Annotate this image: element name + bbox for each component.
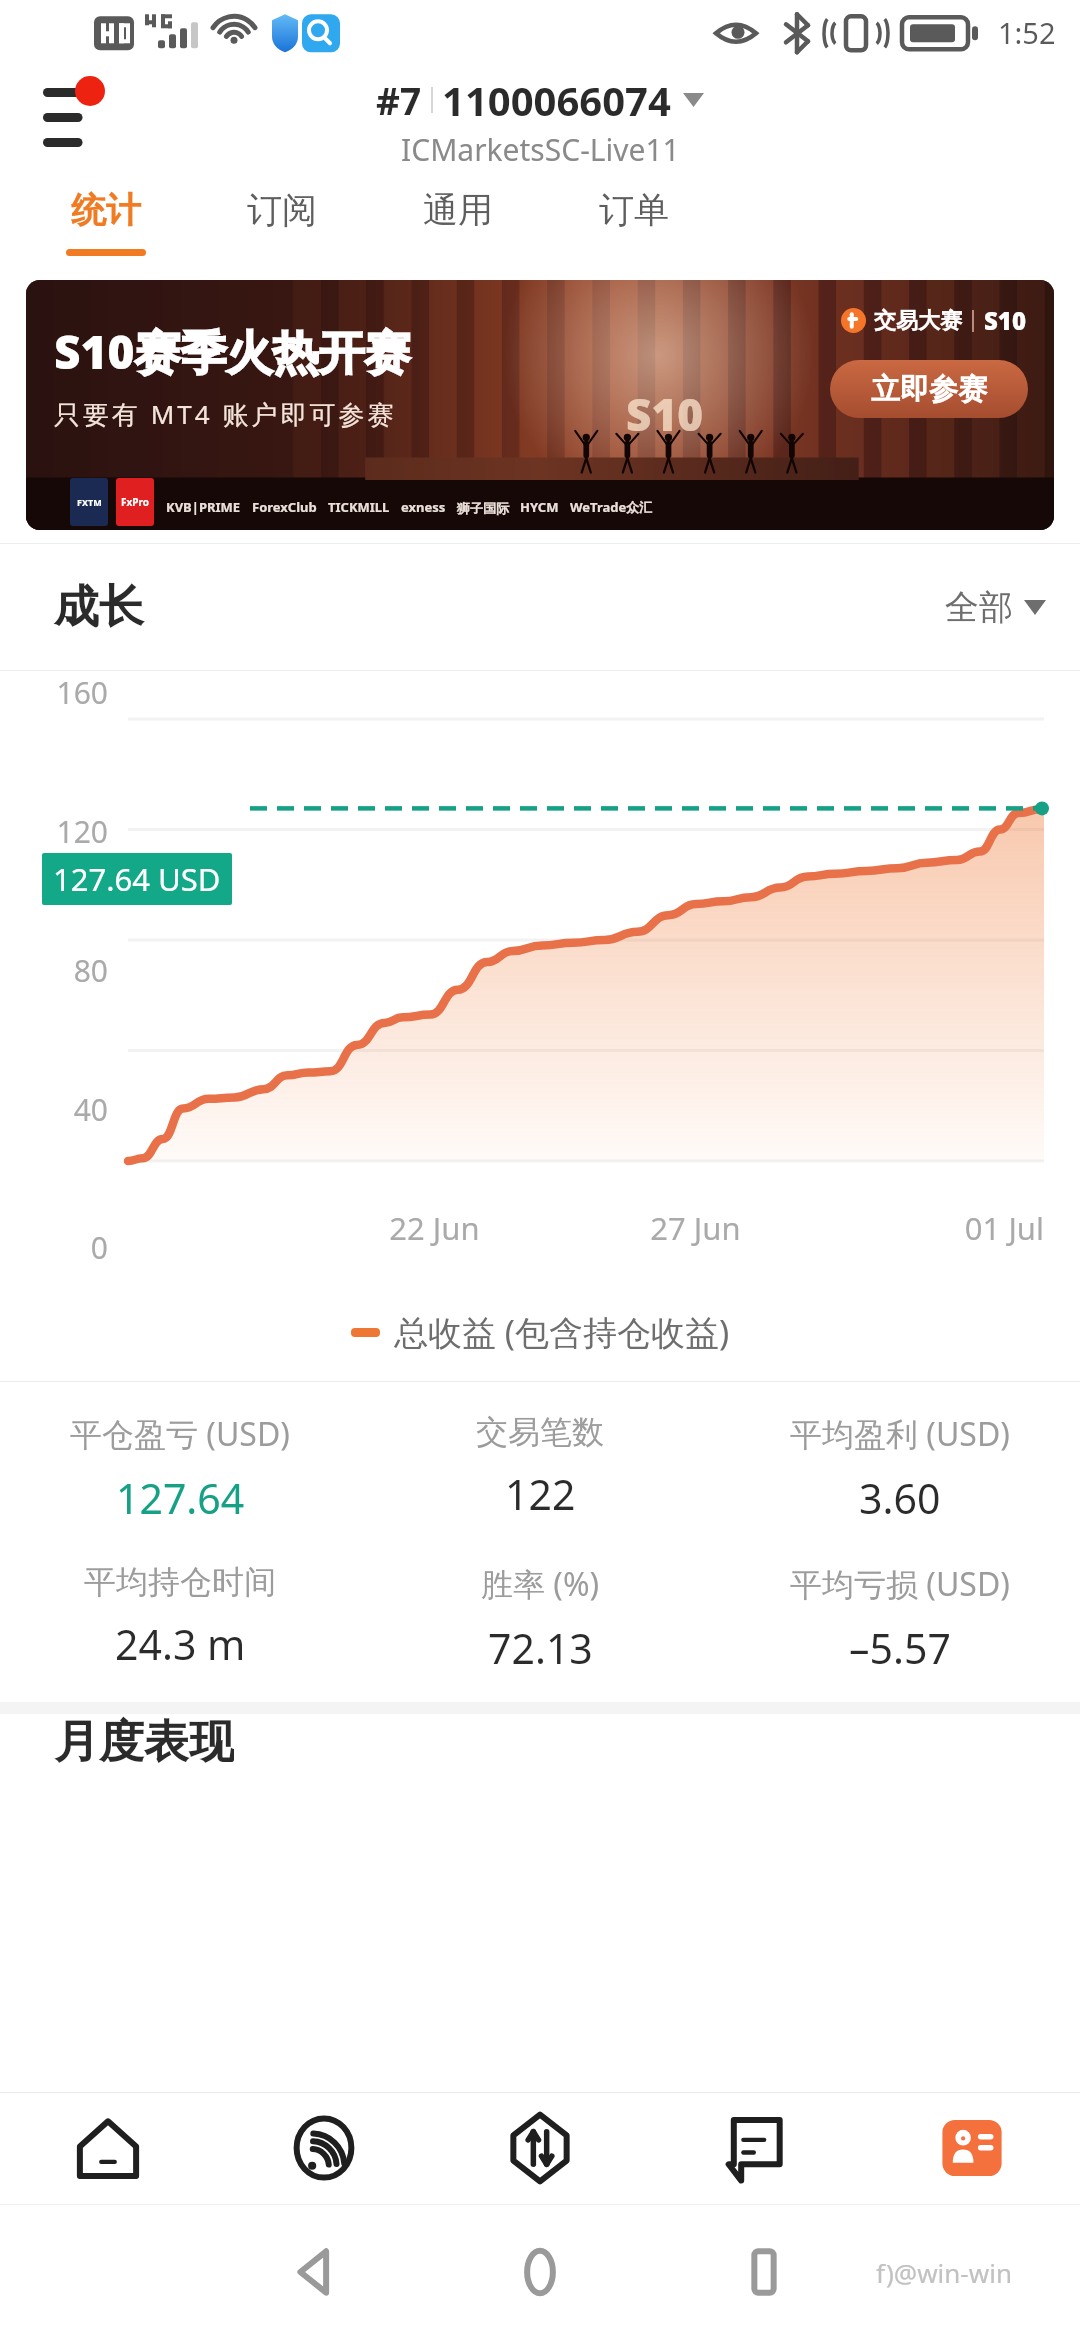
staticText: FxPro	[121, 495, 149, 509]
staticText: 1100066074	[442, 73, 671, 127]
button[interactable]: 总收益 (包含持仓收益)	[351, 1309, 730, 1355]
staticText: 交易大赛	[874, 307, 962, 335]
staticText: 120	[0, 811, 108, 852]
staticText: S10	[626, 384, 703, 444]
button[interactable]: 订单	[546, 172, 722, 272]
staticText: 27 Jun	[558, 1207, 833, 1249]
button[interactable]: Menu	[34, 83, 104, 153]
button[interactable]: 胜率 (%)	[360, 1562, 720, 1676]
staticText: 72.13	[488, 1620, 593, 1676]
staticText: 24.3 m	[115, 1616, 246, 1672]
staticText: 通用	[423, 188, 493, 232]
staticText: 立即参赛	[871, 371, 987, 408]
staticText: 平仓盈亏 (USD)	[70, 1412, 290, 1456]
staticText: 平均持仓时间	[84, 1562, 276, 1602]
staticText: HYCM	[520, 498, 559, 516]
button[interactable]: 订阅	[194, 172, 370, 272]
staticText: 平均盈利 (USD)	[790, 1412, 1010, 1456]
staticText: 只要有 MT4 账户即可参赛	[54, 396, 397, 432]
button[interactable]: 立即参赛	[830, 360, 1028, 418]
staticText: TICKMILL	[328, 498, 390, 516]
staticText: 160	[0, 672, 108, 713]
button[interactable]: Back	[204, 2204, 428, 2340]
staticText: WeTrade众汇	[570, 498, 653, 516]
staticText: S10赛季火热开赛	[54, 320, 411, 383]
button[interactable]: S10赛季火热开赛	[26, 280, 1054, 530]
staticText: 交易笔数	[476, 1412, 604, 1452]
button[interactable]: 通用	[370, 172, 546, 272]
staticText: 01 Jul	[833, 1207, 1044, 1249]
staticText: 总收益 (包含持仓收益)	[394, 1309, 730, 1355]
staticText: 狮子国际	[457, 500, 509, 516]
button[interactable]: 统计	[18, 172, 194, 272]
button[interactable]: 交易笔数	[360, 1412, 720, 1522]
button[interactable]: 全部	[945, 586, 1046, 629]
staticText: FXTM	[77, 496, 102, 508]
staticText: 127.64	[116, 1470, 245, 1526]
button[interactable]: 平均亏损 (USD)	[720, 1562, 1080, 1676]
staticText: 0	[0, 1227, 108, 1268]
staticText: 127.64 USD	[53, 858, 221, 900]
staticText: 80	[0, 950, 108, 991]
staticText: –5.57	[849, 1620, 951, 1676]
staticText: 平均亏损 (USD)	[790, 1562, 1010, 1606]
staticText: 胜率 (%)	[481, 1562, 600, 1606]
staticText: 22 Jun	[311, 1207, 558, 1249]
staticText: #7	[376, 75, 422, 125]
button[interactable]: 平仓盈亏 (USD)	[0, 1412, 360, 1526]
staticText: KVB|PRIME	[166, 498, 241, 516]
button[interactable]: Recents	[652, 2204, 876, 2340]
staticText: 订阅	[247, 188, 317, 232]
staticText: ForexClub	[252, 498, 317, 516]
button[interactable]: Home	[0, 2092, 216, 2204]
staticText: 全部	[945, 586, 1013, 629]
staticText: 122	[505, 1466, 576, 1522]
staticText: exness	[401, 498, 446, 516]
button[interactable]: Signals	[216, 2092, 432, 2204]
staticText: 月度表现	[54, 1714, 234, 1770]
button[interactable]: Chat	[648, 2092, 864, 2204]
staticText: 成长	[54, 579, 144, 636]
staticText: ICMarketsSC-Live11	[401, 129, 680, 170]
button[interactable]: 平均盈利 (USD)	[720, 1412, 1080, 1526]
staticText: 统计	[71, 188, 141, 232]
staticText: S10	[984, 304, 1026, 337]
button[interactable]: 平均持仓时间	[0, 1562, 360, 1672]
staticText: 1:52	[998, 13, 1056, 52]
button[interactable]: Home	[428, 2204, 652, 2340]
staticText: f)@win-win	[876, 2255, 1012, 2290]
button[interactable]: Profile	[864, 2092, 1080, 2204]
staticText: 40	[0, 1089, 108, 1130]
staticText: 订单	[599, 188, 669, 232]
button[interactable]: Trade	[432, 2092, 648, 2204]
staticText: 3.60	[859, 1470, 941, 1526]
